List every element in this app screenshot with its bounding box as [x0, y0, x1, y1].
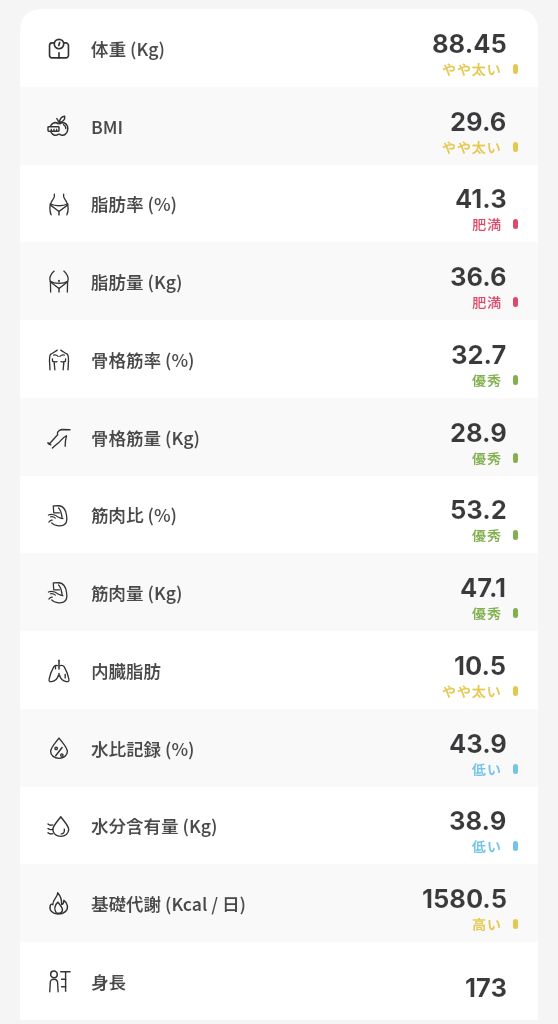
- staticText: BMI: [91, 114, 124, 139]
- staticText: 41.3: [455, 183, 507, 214]
- staticText: 基礎代謝 (Kcal / 日): [91, 891, 246, 916]
- staticText: 低い: [472, 759, 502, 779]
- staticText: 36.6: [450, 261, 507, 292]
- button[interactable]: 水比記録 (%): [20, 709, 538, 787]
- staticText: 筋肉量 (Kg): [91, 580, 183, 605]
- button[interactable]: 脂肪率 (%): [20, 165, 538, 242]
- button[interactable]: 骨格筋量 (Kg): [20, 398, 538, 476]
- button[interactable]: 骨格筋率 (%): [20, 320, 538, 398]
- staticText: 低い: [472, 836, 502, 856]
- staticText: 肥満: [472, 292, 502, 312]
- staticText: 29.6: [450, 106, 507, 137]
- button[interactable]: 水分含有量 (Kg): [20, 787, 538, 864]
- staticText: 10.5: [454, 650, 507, 681]
- staticText: 173: [465, 972, 507, 1003]
- staticText: 優秀: [472, 370, 502, 390]
- staticText: 水比記録 (%): [91, 736, 195, 761]
- staticText: 88.45: [432, 28, 507, 59]
- staticText: 骨格筋量 (Kg): [91, 425, 200, 450]
- staticText: 身長: [91, 969, 126, 994]
- staticText: 肥満: [472, 214, 502, 234]
- staticText: 32.7: [451, 339, 507, 370]
- staticText: 1580.5: [422, 883, 507, 914]
- staticText: 優秀: [472, 448, 502, 468]
- staticText: やや太い: [442, 137, 502, 157]
- staticText: 脂肪量 (Kg): [91, 269, 183, 294]
- button[interactable]: 身長: [20, 942, 538, 1020]
- staticText: 47.1: [460, 572, 507, 603]
- staticText: 内臓脂肪: [91, 658, 161, 683]
- staticText: 水分含有量 (Kg): [91, 813, 218, 838]
- staticText: 体重 (Kg): [91, 36, 165, 61]
- staticText: 骨格筋率 (%): [91, 347, 195, 372]
- button[interactable]: 脂肪量 (Kg): [20, 242, 538, 320]
- staticText: 優秀: [472, 525, 502, 545]
- staticText: 優秀: [472, 603, 502, 623]
- button[interactable]: 筋肉量 (Kg): [20, 553, 538, 631]
- button[interactable]: 内臓脂肪: [20, 631, 538, 709]
- button[interactable]: 体重 (Kg): [20, 9, 538, 87]
- button[interactable]: BMI: [20, 87, 538, 165]
- staticText: やや太い: [442, 59, 502, 79]
- staticText: 38.9: [449, 805, 507, 836]
- staticText: 高い: [472, 914, 502, 934]
- staticText: 43.9: [449, 728, 507, 759]
- staticText: 脂肪率 (%): [91, 191, 177, 216]
- staticText: 28.9: [450, 417, 507, 448]
- staticText: 53.2: [450, 494, 507, 525]
- button[interactable]: 筋肉比 (%): [20, 476, 538, 553]
- button[interactable]: 基礎代謝 (Kcal / 日): [20, 864, 538, 942]
- staticText: やや太い: [442, 681, 502, 701]
- staticText: 筋肉比 (%): [91, 502, 177, 527]
